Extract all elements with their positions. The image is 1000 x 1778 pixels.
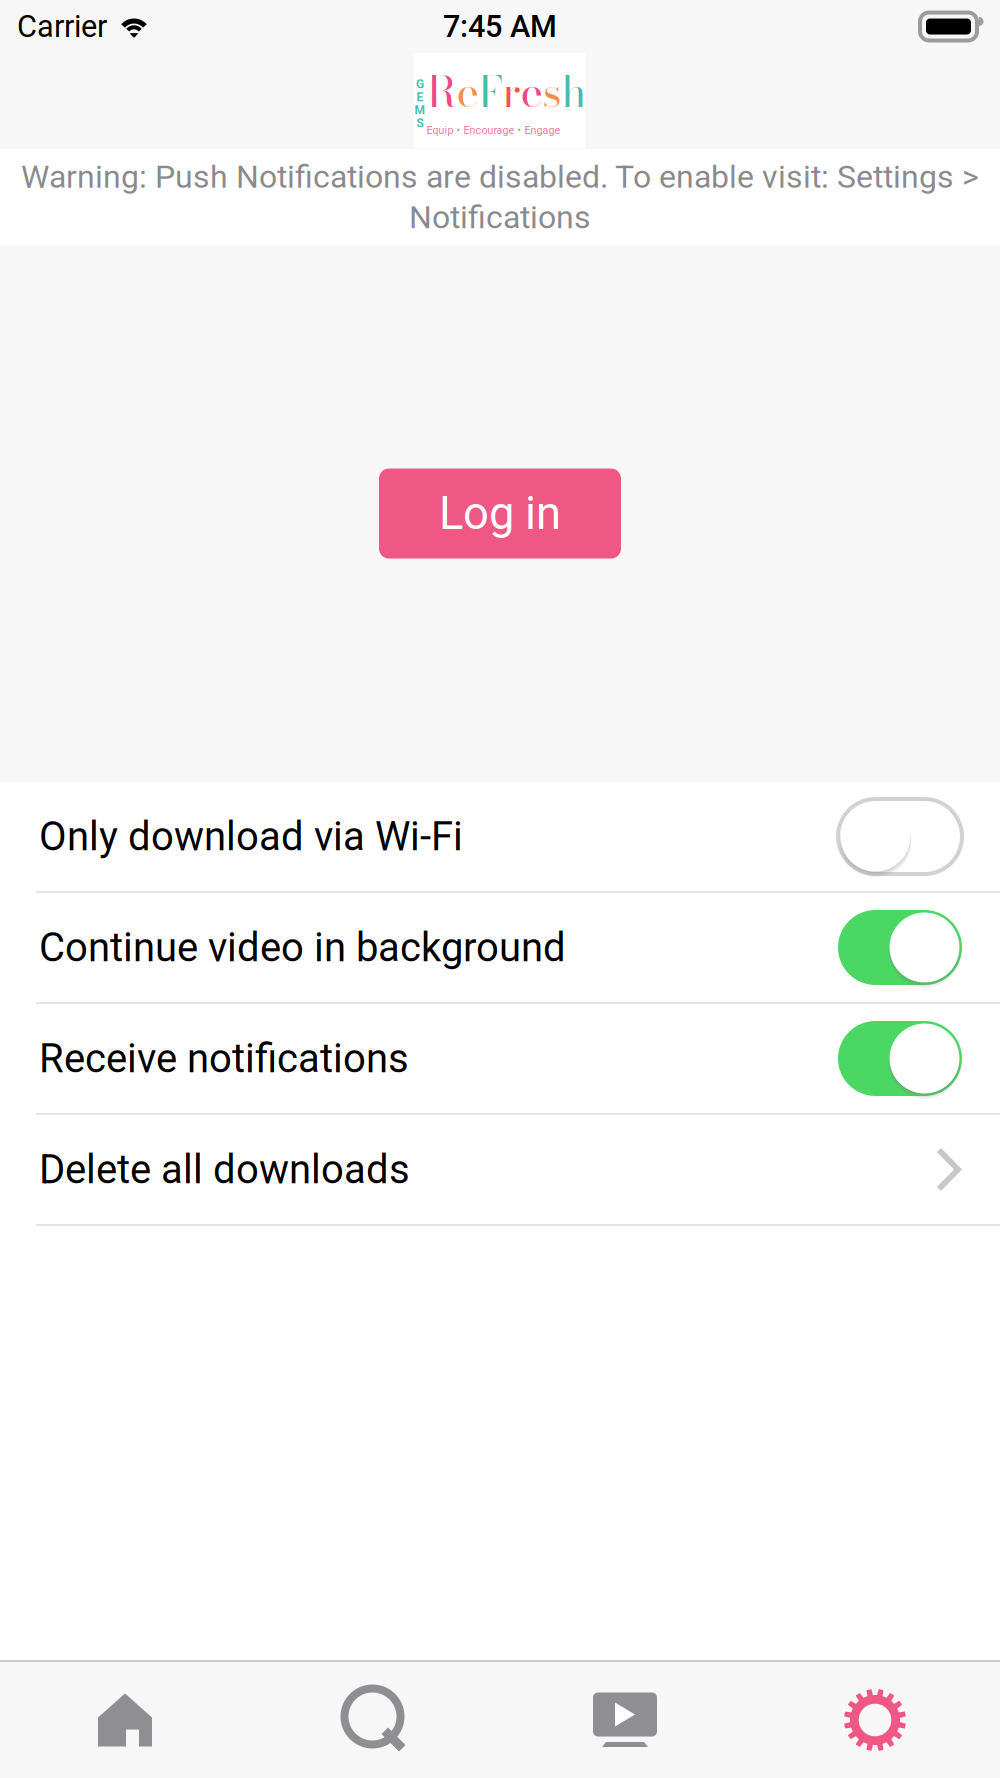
staticText: h	[561, 59, 586, 124]
staticText: G	[416, 77, 424, 91]
staticText: e	[456, 59, 478, 124]
staticText: Warning: Push Notifications are disabled…	[21, 158, 979, 195]
staticText: Log in	[439, 487, 561, 540]
staticText: Delete all downloads	[39, 1146, 410, 1193]
staticText: 7:45 AM	[443, 8, 557, 44]
staticText: E	[416, 90, 423, 104]
staticText: Notifications	[409, 198, 591, 236]
button[interactable]: Home	[0, 1662, 250, 1778]
staticText: r	[502, 59, 520, 124]
staticText: Equip • Encourage • Engage	[426, 124, 560, 136]
button[interactable]: Videos	[500, 1662, 750, 1778]
staticText: Receive notifications	[39, 1035, 409, 1082]
button[interactable]: Receive notifications	[0, 1004, 1000, 1115]
staticText: F	[478, 59, 502, 124]
button[interactable]: Search	[250, 1662, 500, 1778]
staticText: Continue video in background	[39, 924, 566, 971]
staticText: Carrier	[17, 8, 107, 44]
staticText: S	[416, 116, 423, 130]
staticText: s	[542, 59, 561, 124]
button[interactable]: Continue video in background	[0, 893, 1000, 1004]
button[interactable]: Settings	[750, 1662, 1000, 1778]
staticText: e	[520, 59, 542, 124]
staticText: Only download via Wi-Fi	[39, 813, 463, 860]
button[interactable]: Log in	[379, 468, 621, 558]
button[interactable]: Delete all downloads	[0, 1115, 1000, 1226]
button[interactable]: Only download via Wi-Fi	[0, 782, 1000, 893]
staticText: R	[426, 59, 456, 124]
staticText: M	[414, 103, 425, 117]
